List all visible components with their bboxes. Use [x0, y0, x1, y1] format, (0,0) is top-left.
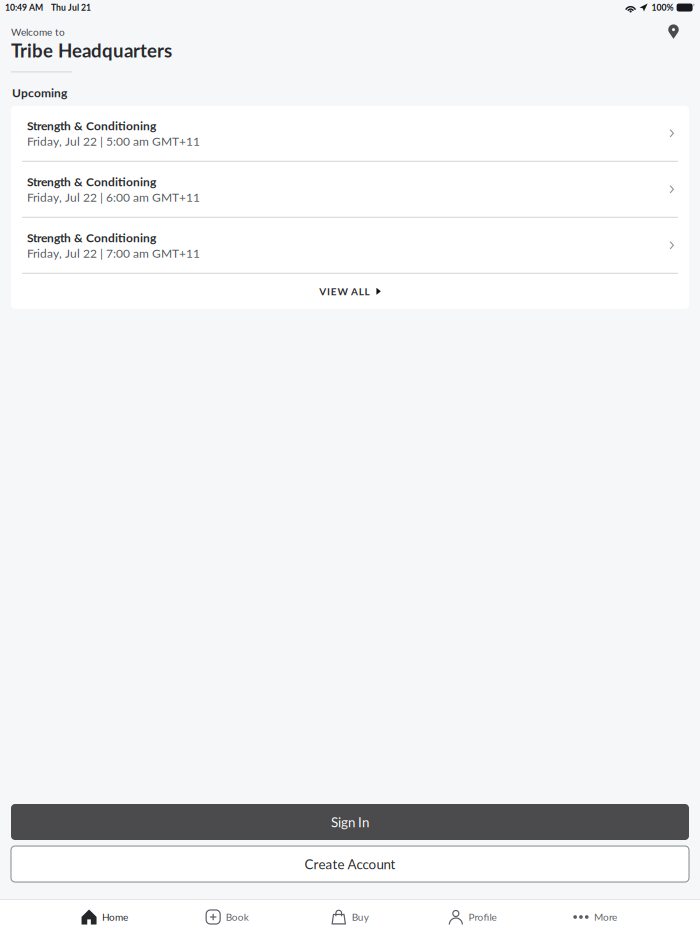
staticText: Upcoming	[12, 85, 67, 100]
staticText: Strength & Conditioning	[27, 230, 156, 245]
staticText: Strength & Conditioning	[27, 174, 156, 189]
staticText: Profile	[469, 911, 497, 923]
staticText: Thu Jul 21	[51, 2, 91, 13]
staticText: Book	[226, 911, 249, 923]
staticText: Home	[102, 911, 128, 923]
button[interactable]: VIEW ALL	[11, 274, 689, 309]
button[interactable]: Strength & Conditioning	[11, 218, 689, 273]
staticText: More	[594, 911, 617, 923]
staticText: Strength & Conditioning	[27, 118, 156, 133]
staticText: Friday, Jul 22 | 5:00 am GMT+11	[27, 134, 200, 148]
button[interactable]: Buy	[289, 900, 411, 934]
staticText: Tribe Headquarters	[11, 39, 172, 61]
button[interactable]: Home	[43, 900, 166, 934]
button[interactable]: Strength & Conditioning	[11, 106, 689, 161]
staticText: Create Account	[304, 856, 395, 872]
staticText: VIEW ALL	[319, 285, 369, 297]
staticText: 100%	[652, 2, 674, 13]
staticText: Sign In	[331, 814, 369, 830]
staticText: Friday, Jul 22 | 6:00 am GMT+11	[27, 190, 200, 204]
button[interactable]: More	[534, 900, 656, 934]
button[interactable]: Sign In	[11, 804, 689, 840]
button[interactable]: Create Account	[11, 846, 689, 882]
staticText: Buy	[352, 911, 369, 923]
button[interactable]: Strength & Conditioning	[11, 162, 689, 217]
staticText: 10:49 AM	[5, 2, 43, 13]
button[interactable]: Book	[166, 900, 289, 934]
button[interactable]: Location	[657, 15, 690, 48]
button[interactable]: Profile	[411, 900, 534, 934]
staticText: Friday, Jul 22 | 7:00 am GMT+11	[27, 246, 200, 260]
staticText: Welcome to	[11, 26, 65, 38]
